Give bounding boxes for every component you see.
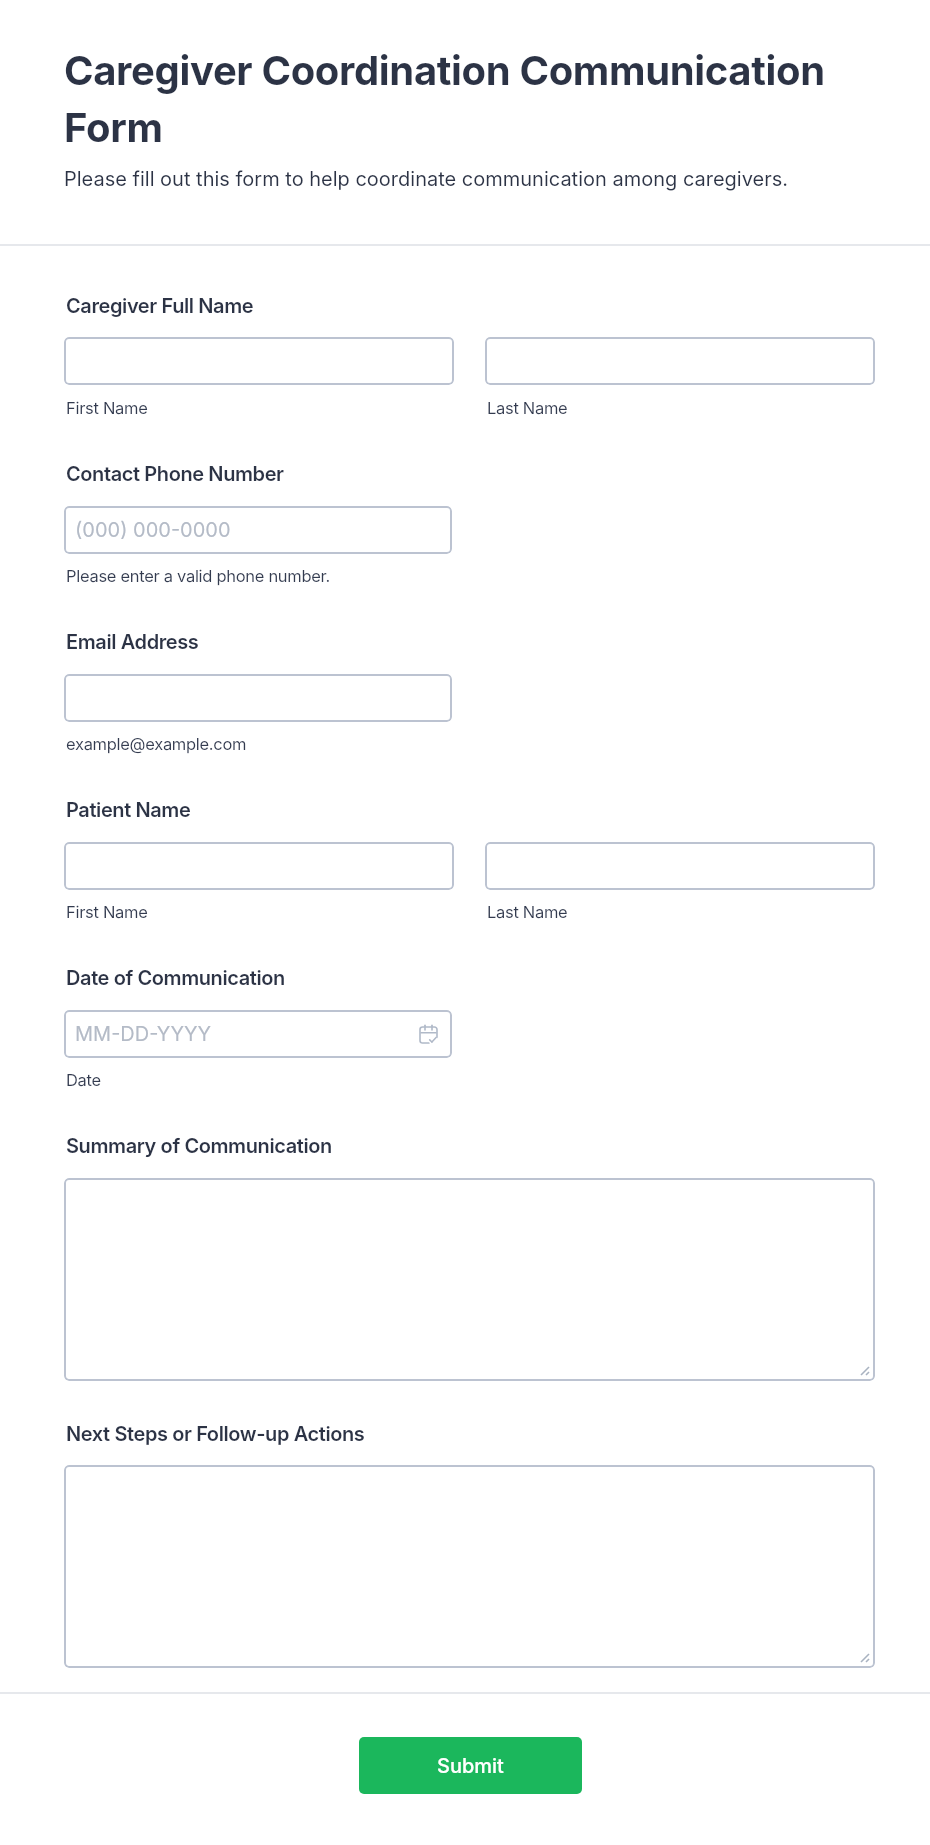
staticText: Caregiver Coordination Communication For…: [64, 46, 894, 152]
staticText: Please fill out this form to help coordi…: [64, 167, 789, 191]
staticText: Date of Communication: [66, 966, 285, 990]
staticText: Submit: [437, 1754, 504, 1778]
staticText: Summary of Communication: [66, 1134, 332, 1158]
button[interactable]: [64, 1465, 875, 1668]
staticText: Last Name: [487, 902, 568, 922]
staticText: Date: [66, 1070, 101, 1090]
staticText: First Name: [66, 398, 148, 418]
staticText: MM-DD-YYYY: [75, 1022, 212, 1046]
staticText: example@example.com: [66, 734, 247, 754]
staticText: Patient Name: [66, 798, 191, 822]
button[interactable]: Submit: [359, 1737, 582, 1794]
button[interactable]: [64, 842, 454, 890]
staticText: Last Name: [487, 398, 568, 418]
button[interactable]: [485, 337, 875, 385]
staticText: Email Address: [66, 630, 199, 654]
staticText: Caregiver Full Name: [66, 294, 254, 318]
button[interactable]: [64, 1178, 875, 1381]
button[interactable]: MM-DD-YYYY: [64, 1010, 452, 1058]
staticText: Next Steps or Follow-up Actions: [66, 1422, 365, 1446]
staticText: Contact Phone Number: [66, 462, 284, 486]
staticText: (000) 000-0000: [75, 518, 231, 542]
staticText: Please enter a valid phone number.: [66, 566, 330, 586]
button[interactable]: [64, 674, 452, 722]
button[interactable]: [485, 842, 875, 890]
button[interactable]: (000) 000-0000: [64, 506, 452, 554]
button[interactable]: [64, 337, 454, 385]
staticText: First Name: [66, 902, 148, 922]
